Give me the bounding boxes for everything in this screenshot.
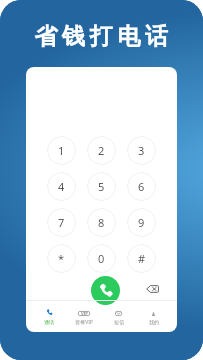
- button[interactable]: 2: [87, 136, 116, 165]
- staticText: 1: [58, 143, 65, 158]
- staticText: 短信: [114, 319, 124, 325]
- button[interactable]: 6: [127, 172, 156, 201]
- staticText: 5: [98, 179, 105, 194]
- button[interactable]: 我的: [136, 308, 171, 325]
- button[interactable]: 3: [127, 136, 156, 165]
- staticText: 8: [98, 215, 105, 230]
- staticText: 6: [138, 179, 145, 194]
- staticText: 2: [98, 143, 105, 158]
- button[interactable]: 0: [87, 244, 116, 273]
- staticText: #: [138, 251, 146, 266]
- button[interactable]: Delete: [142, 278, 163, 299]
- button[interactable]: 短信: [101, 308, 136, 325]
- button[interactable]: *: [47, 244, 76, 273]
- button[interactable]: VIP: [66, 308, 101, 326]
- staticText: 9: [138, 215, 145, 230]
- staticText: 套餐VIP: [75, 319, 93, 326]
- button[interactable]: 4: [47, 172, 76, 201]
- button[interactable]: 通话: [32, 308, 66, 325]
- button[interactable]: 9: [127, 208, 156, 237]
- staticText: VIP: [81, 311, 88, 316]
- staticText: 4: [58, 179, 65, 194]
- button[interactable]: 7: [47, 208, 76, 237]
- button[interactable]: 8: [87, 208, 116, 237]
- staticText: 通话: [44, 319, 54, 325]
- button[interactable]: 5: [87, 172, 116, 201]
- staticText: 省钱打电话: [2, 22, 203, 51]
- button[interactable]: #: [127, 244, 156, 273]
- button[interactable]: Call: [91, 276, 120, 305]
- staticText: 0: [98, 251, 105, 266]
- staticText: 7: [58, 215, 65, 230]
- staticText: *: [58, 251, 65, 266]
- staticText: 我的: [149, 319, 159, 325]
- staticText: 3: [138, 143, 145, 158]
- button[interactable]: 1: [47, 136, 76, 165]
